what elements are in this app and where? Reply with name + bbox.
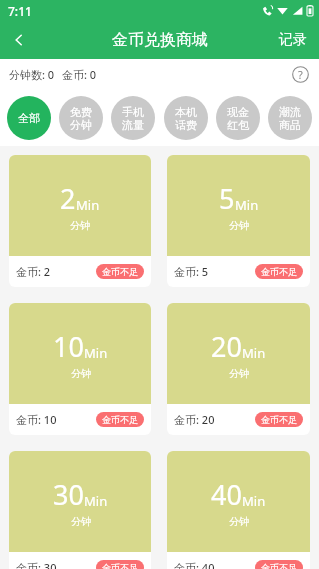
button[interactable]: 40 xyxy=(167,451,310,569)
button[interactable]: 30 xyxy=(9,451,151,569)
staticText: 分钟 xyxy=(71,515,91,528)
button[interactable]: 2 xyxy=(9,155,151,287)
staticText: 现金 红包 xyxy=(227,105,249,132)
staticText: 2 xyxy=(60,180,76,217)
button[interactable]: 金币不足 xyxy=(96,412,144,427)
staticText: 金币: 2 xyxy=(16,264,51,279)
staticText: 金币: 20 xyxy=(174,412,215,427)
staticText: 免费 分钟 xyxy=(70,105,92,132)
staticText: 金币: 0 xyxy=(62,67,97,82)
staticText: 金币不足 xyxy=(102,562,138,569)
staticText: 金币: 5 xyxy=(174,264,209,279)
staticText: 金币: 40 xyxy=(174,560,215,569)
staticText: 金币兑换商城 xyxy=(112,30,208,50)
staticText: 30 xyxy=(53,476,84,513)
staticText: 分钟 xyxy=(71,367,91,380)
staticText: 10 xyxy=(53,328,84,365)
staticText: 金币不足 xyxy=(261,266,297,277)
button[interactable]: 潮流 商品 xyxy=(268,96,312,140)
staticText: Min xyxy=(242,492,266,510)
button[interactable]: 5 xyxy=(167,155,310,287)
button[interactable]: 金币不足 xyxy=(255,264,303,279)
staticText: 金币不足 xyxy=(261,562,297,569)
staticText: 分钟 xyxy=(70,219,90,232)
staticText: 潮流 商品 xyxy=(279,105,301,132)
staticText: 金币: 30 xyxy=(16,560,57,569)
staticText: 全部 xyxy=(18,111,40,125)
staticText: Min xyxy=(242,344,266,362)
button[interactable]: 全部 xyxy=(7,96,51,140)
button[interactable]: 10 xyxy=(9,303,151,435)
staticText: 金币: 10 xyxy=(16,412,57,427)
staticText: 分钟 xyxy=(229,219,249,232)
button[interactable]: 金币不足 xyxy=(96,264,144,279)
staticText: 7:11 xyxy=(8,3,32,19)
staticText: 记录 xyxy=(279,31,307,49)
button[interactable]: 本机 话费 xyxy=(164,96,208,140)
button[interactable]: 手机 流量 xyxy=(111,96,155,140)
staticText: 手机 流量 xyxy=(122,105,144,132)
staticText: 分钟 xyxy=(229,515,249,528)
button[interactable]: 免费 分钟 xyxy=(59,96,103,140)
button[interactable]: 记录 xyxy=(267,21,319,59)
button[interactable]: 现金 红包 xyxy=(216,96,260,140)
button[interactable]: Back xyxy=(0,21,38,59)
staticText: Min xyxy=(84,344,108,362)
staticText: 本机 话费 xyxy=(175,105,197,132)
button[interactable]: 金币不足 xyxy=(96,560,144,569)
button[interactable]: 金币不足 xyxy=(255,560,303,569)
staticText: 金币不足 xyxy=(102,414,138,425)
staticText: Min xyxy=(235,196,259,214)
staticText: 金币不足 xyxy=(102,266,138,277)
staticText: 5 xyxy=(219,180,235,217)
staticText: ? xyxy=(298,67,303,82)
button[interactable]: Help xyxy=(289,63,311,85)
staticText: 20 xyxy=(211,328,242,365)
staticText: Min xyxy=(76,196,100,214)
staticText: Min xyxy=(84,492,108,510)
button[interactable]: 20 xyxy=(167,303,310,435)
button[interactable]: 金币不足 xyxy=(255,412,303,427)
staticText: 分钟数: 0 xyxy=(9,67,55,82)
staticText: 分钟 xyxy=(229,367,249,380)
staticText: 金币不足 xyxy=(261,414,297,425)
staticText: 40 xyxy=(211,476,242,513)
